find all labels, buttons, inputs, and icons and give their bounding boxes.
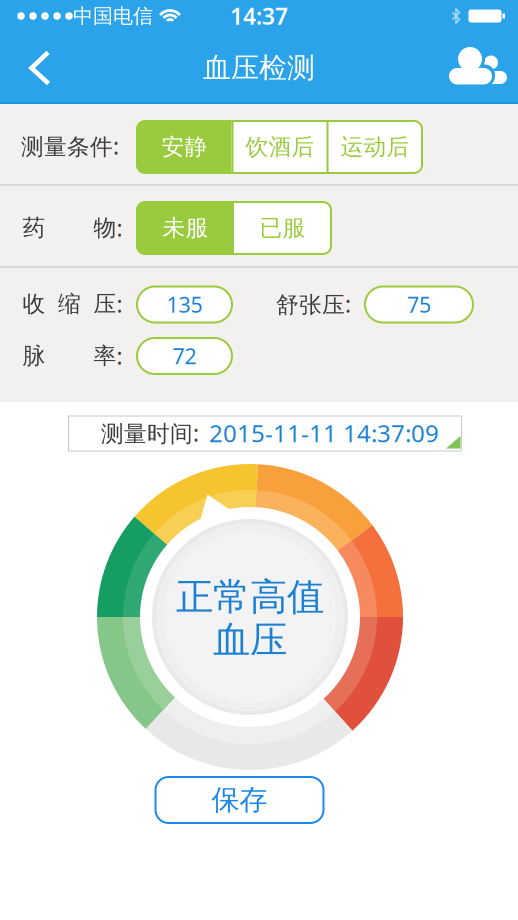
- button[interactable]: Contacts: [444, 50, 504, 86]
- staticText: 测量条件:: [21, 131, 119, 161]
- staticText: 未服: [162, 214, 208, 242]
- staticText: :: [116, 289, 122, 319]
- staticText: 14:37: [230, 1, 288, 31]
- staticText: :: [116, 213, 122, 243]
- button[interactable]: 测量时间:: [68, 415, 462, 451]
- staticText: 正常高值: [176, 574, 324, 620]
- button[interactable]: 安静: [137, 121, 231, 173]
- staticText: 已服: [259, 214, 305, 242]
- staticText: 缩: [58, 290, 81, 318]
- staticText: :: [116, 341, 122, 371]
- staticText: 药: [22, 214, 45, 242]
- staticText: 舒张压:: [276, 289, 351, 319]
- button[interactable]: 运动后: [328, 121, 422, 173]
- staticText: 2015-11-11 14:37:09: [209, 417, 439, 449]
- staticText: 脉: [22, 342, 45, 370]
- button[interactable]: 135: [137, 286, 232, 322]
- staticText: 保存: [211, 783, 267, 817]
- staticText: 测量时间:: [101, 418, 199, 448]
- staticText: 率: [93, 342, 116, 370]
- staticText: 135: [166, 290, 202, 319]
- button[interactable]: 饮酒后: [232, 121, 327, 173]
- staticText: 饮酒后: [245, 133, 314, 161]
- staticText: 血压: [213, 617, 287, 663]
- staticText: 血压检测: [203, 51, 315, 85]
- button[interactable]: 未服: [137, 202, 234, 254]
- staticText: 物: [93, 214, 116, 242]
- staticText: 中国电信: [73, 4, 153, 28]
- button[interactable]: 72: [137, 338, 232, 374]
- staticText: 安静: [161, 133, 207, 161]
- button[interactable]: 已服: [234, 202, 331, 254]
- staticText: 运动后: [340, 133, 409, 161]
- staticText: 72: [172, 342, 196, 370]
- button[interactable]: 保存: [155, 777, 323, 823]
- button[interactable]: Back: [28, 50, 52, 85]
- staticText: 收: [22, 290, 45, 318]
- staticText: 75: [407, 290, 431, 319]
- button[interactable]: 75: [365, 286, 473, 322]
- staticText: 压: [93, 290, 116, 318]
